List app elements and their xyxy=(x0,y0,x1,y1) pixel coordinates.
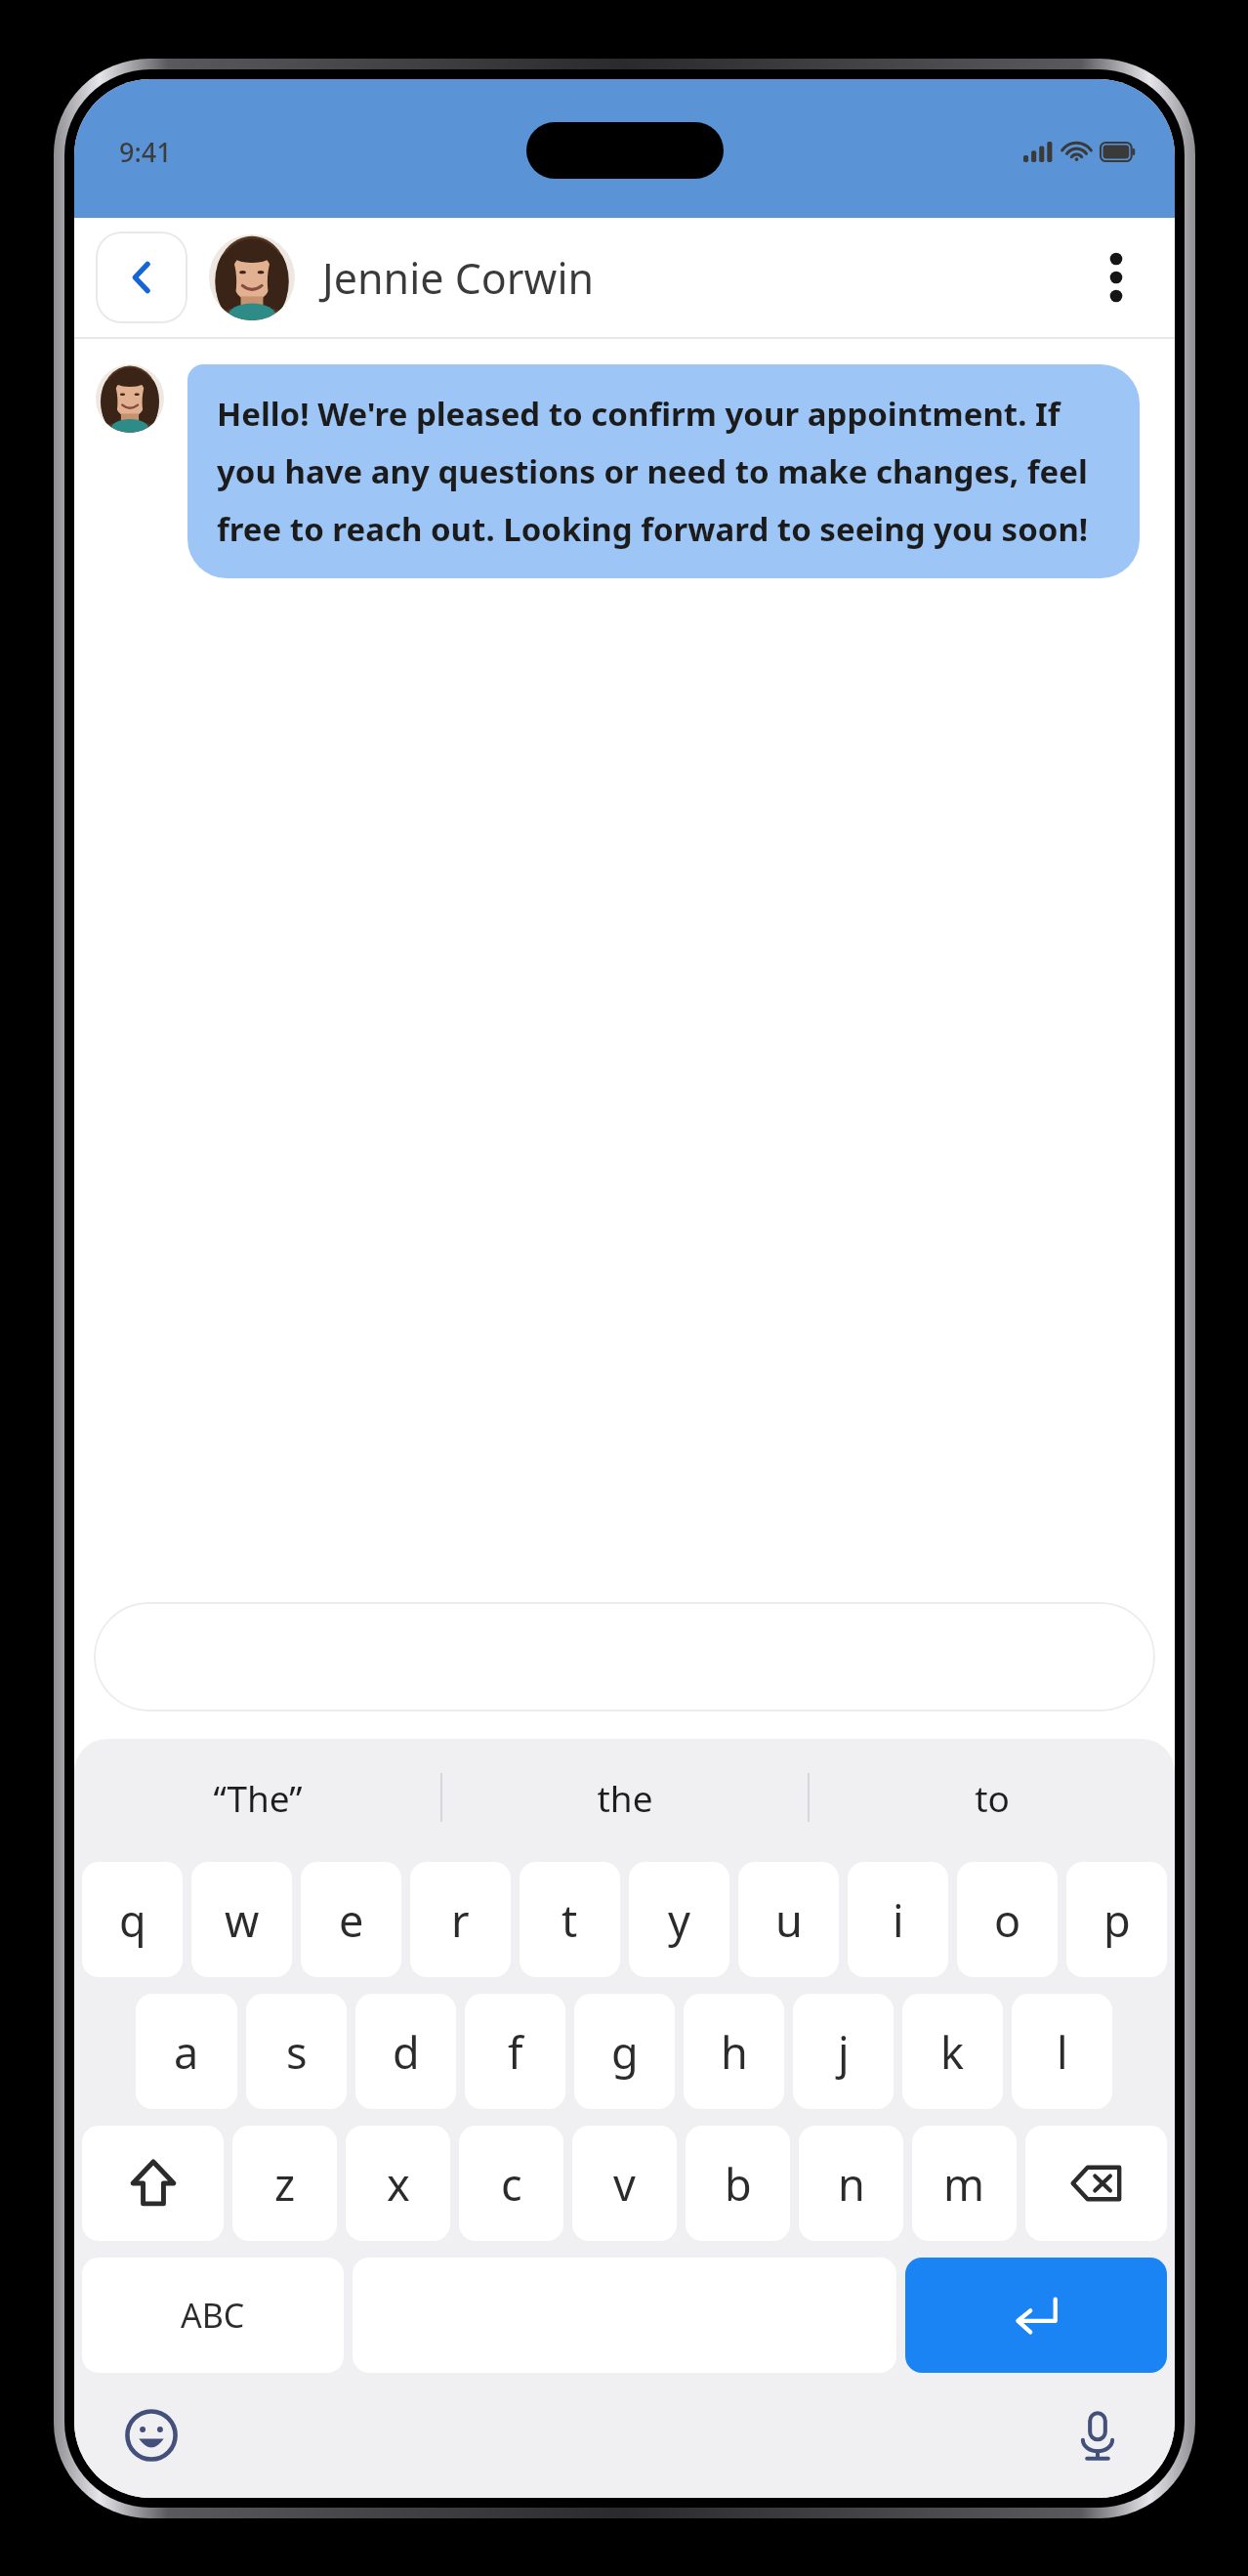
staticText: e xyxy=(339,1890,364,1950)
staticText: Jennie Corwin xyxy=(322,249,595,307)
button[interactable]: y xyxy=(629,1862,729,1977)
staticText: ABC xyxy=(181,2293,245,2338)
button[interactable]: Back xyxy=(96,232,187,323)
button[interactable]: g xyxy=(574,1994,675,2109)
button[interactable]: the xyxy=(442,1739,808,1856)
button[interactable]: w xyxy=(191,1862,292,1977)
button[interactable]: h xyxy=(684,1994,784,2109)
button[interactable]: l xyxy=(1012,1994,1112,2109)
staticText: i xyxy=(893,1890,904,1950)
staticText: c xyxy=(501,2154,522,2214)
button[interactable]: b xyxy=(686,2126,790,2241)
staticText: v xyxy=(613,2154,636,2214)
button[interactable]: v xyxy=(572,2126,677,2241)
staticText: x xyxy=(387,2154,410,2214)
staticText: a xyxy=(174,2022,199,2082)
staticText: u xyxy=(775,1890,803,1950)
button[interactable]: ABC xyxy=(82,2258,344,2373)
button[interactable]: d xyxy=(355,1994,456,2109)
staticText: l xyxy=(1057,2022,1068,2082)
button[interactable]: Shift xyxy=(82,2126,224,2241)
staticText: f xyxy=(508,2022,523,2082)
button[interactable]: z xyxy=(232,2126,337,2241)
button[interactable]: c xyxy=(459,2126,563,2241)
staticText: p xyxy=(1103,1890,1131,1950)
staticText: w xyxy=(225,1890,260,1950)
button[interactable]: u xyxy=(738,1862,839,1977)
staticText: to xyxy=(975,1773,1010,1822)
staticText: o xyxy=(994,1890,1021,1950)
button[interactable]: to xyxy=(810,1739,1175,1856)
button[interactable]: Voice input xyxy=(1058,2395,1138,2475)
button[interactable]: o xyxy=(957,1862,1058,1977)
button[interactable]: t xyxy=(520,1862,620,1977)
staticText: s xyxy=(286,2022,308,2082)
staticText: “The” xyxy=(213,1773,303,1822)
button[interactable]: k xyxy=(902,1994,1003,2109)
staticText: d xyxy=(393,2022,420,2082)
button[interactable]: Message input xyxy=(94,1602,1155,1711)
staticText: m xyxy=(943,2154,985,2214)
button[interactable]: x xyxy=(346,2126,450,2241)
button[interactable]: n xyxy=(799,2126,903,2241)
staticText: z xyxy=(274,2154,296,2214)
button[interactable]: Backspace xyxy=(1025,2126,1167,2241)
button[interactable]: j xyxy=(793,1994,894,2109)
button[interactable]: Enter xyxy=(905,2258,1167,2373)
staticText: q xyxy=(119,1890,146,1950)
staticText: h xyxy=(721,2022,748,2082)
button[interactable]: i xyxy=(848,1862,948,1977)
button[interactable]: a xyxy=(136,1994,237,2109)
button[interactable]: p xyxy=(1066,1862,1167,1977)
button[interactable]: More options xyxy=(1079,240,1153,315)
staticText: n xyxy=(838,2154,865,2214)
button[interactable]: s xyxy=(246,1994,347,2109)
button[interactable]: e xyxy=(301,1862,401,1977)
staticText: t xyxy=(562,1890,578,1950)
staticText: k xyxy=(940,2022,965,2082)
staticText: the xyxy=(597,1773,653,1822)
staticText: r xyxy=(451,1890,470,1950)
staticText: 9:41 xyxy=(119,134,172,170)
button[interactable]: q xyxy=(82,1862,183,1977)
button[interactable]: m xyxy=(912,2126,1017,2241)
staticText: b xyxy=(725,2154,752,2214)
button[interactable]: “The” xyxy=(74,1739,440,1856)
staticText: j xyxy=(838,2022,850,2082)
staticText: Hello! We're pleased to confirm your app… xyxy=(217,392,1110,551)
staticText: g xyxy=(611,2022,639,2082)
staticText: y xyxy=(668,1890,690,1950)
button[interactable]: Emoji xyxy=(111,2395,191,2475)
button[interactable]: Hello! We're pleased to confirm your app… xyxy=(187,364,1140,578)
button[interactable]: f xyxy=(465,1994,565,2109)
button[interactable]: r xyxy=(410,1862,511,1977)
